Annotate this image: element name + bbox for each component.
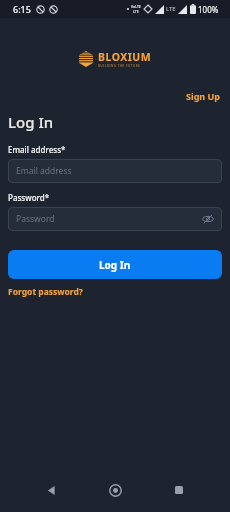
button[interactable]: Forgot password? bbox=[8, 286, 83, 298]
staticText: BLOXIUM bbox=[98, 50, 152, 64]
staticText: Password bbox=[16, 213, 55, 225]
button[interactable] bbox=[167, 478, 191, 502]
button[interactable]: Email address bbox=[8, 159, 222, 183]
button[interactable]: Password bbox=[8, 207, 222, 231]
button[interactable] bbox=[39, 478, 63, 502]
staticText: LTE bbox=[133, 9, 139, 14]
button[interactable] bbox=[103, 478, 127, 502]
staticText: Email address* bbox=[8, 144, 66, 155]
staticText: Password* bbox=[8, 192, 50, 203]
staticText: Sign Up bbox=[186, 90, 221, 102]
button[interactable]: Sign Up bbox=[186, 90, 221, 102]
button[interactable]: Log In bbox=[8, 250, 222, 279]
staticText: 100% bbox=[198, 4, 219, 15]
staticText: VoLTE bbox=[131, 4, 141, 9]
staticText: Email address bbox=[16, 165, 72, 177]
staticText: LTE bbox=[166, 5, 176, 13]
staticText: BUILDING THE FUTURE bbox=[98, 64, 141, 68]
staticText: Forgot password? bbox=[8, 286, 83, 298]
staticText: Log In bbox=[8, 112, 54, 132]
staticText: Log In bbox=[99, 258, 131, 272]
staticText: 6:15 bbox=[13, 3, 31, 15]
